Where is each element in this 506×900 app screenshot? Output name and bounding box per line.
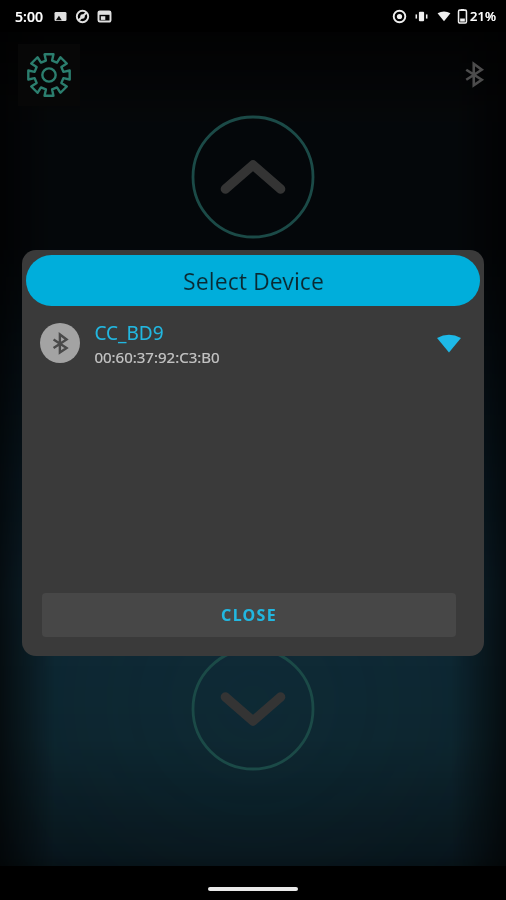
staticText: 21% (470, 7, 496, 25)
button[interactable]: Select Device (26, 255, 480, 306)
staticText: Select Device (183, 265, 324, 296)
button[interactable]: Scroll up (190, 114, 316, 240)
button[interactable]: CC_BD9 (26, 312, 480, 374)
staticText: 5:00 (15, 7, 43, 26)
button[interactable]: Bluetooth (452, 52, 496, 96)
staticText: CC_BD9 (94, 320, 164, 346)
button[interactable]: Scroll down (190, 646, 316, 772)
button[interactable]: CLOSE (42, 593, 456, 637)
staticText: 00:60:37:92:C3:B0 (94, 347, 220, 367)
button[interactable]: Settings (18, 44, 80, 106)
staticText: CLOSE (221, 604, 277, 626)
